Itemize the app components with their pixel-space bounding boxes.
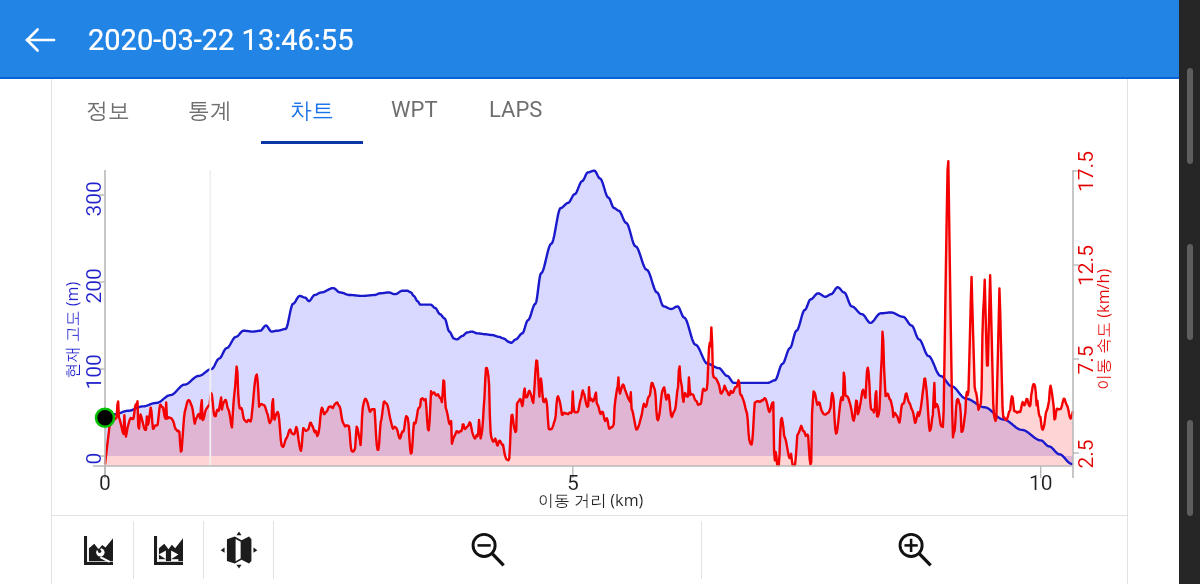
staticText: 5 [567, 471, 579, 496]
staticText: 10 [1029, 471, 1053, 496]
staticText: 2.5 [1073, 438, 1098, 468]
button[interactable]: Home [1179, 232, 1200, 352]
staticText: 17.5 [1074, 151, 1099, 192]
button[interactable]: 정보 [57, 79, 159, 147]
staticText: 300 [81, 180, 106, 216]
button[interactable]: Back [1179, 408, 1200, 528]
button[interactable]: Back [17, 17, 63, 63]
staticText: 100 [81, 353, 106, 389]
button[interactable]: 통계 [159, 79, 261, 147]
button[interactable]: Chart data [134, 516, 203, 584]
staticText: 12.5 [1074, 245, 1099, 286]
staticText: 정보 [86, 97, 130, 125]
button[interactable]: Zoom out [274, 516, 701, 584]
staticText: 0 [99, 471, 111, 496]
button[interactable]: Map [204, 516, 273, 584]
staticText: WPT [391, 97, 438, 123]
staticText: 200 [81, 267, 106, 303]
staticText: 통계 [188, 97, 232, 125]
button[interactable]: 차트 [261, 79, 363, 147]
button[interactable]: WPT [363, 79, 465, 147]
staticText: 이동 거리 (km) [538, 489, 644, 511]
staticText: 차트 [290, 97, 334, 125]
staticText: 현재 고도 (m) [60, 281, 82, 378]
staticText: 0 [81, 452, 106, 464]
button[interactable]: Chart settings [64, 516, 133, 584]
button[interactable]: LAPS [465, 79, 567, 147]
staticText: 2020-03-22 13:46:55 [88, 23, 354, 57]
staticText: 7.5 [1073, 344, 1098, 374]
button[interactable]: Zoom in [702, 516, 1127, 584]
staticText: 이동 속도 (km/h) [1092, 268, 1114, 390]
button[interactable]: Recents [1179, 56, 1200, 176]
staticText: LAPS [489, 97, 543, 123]
